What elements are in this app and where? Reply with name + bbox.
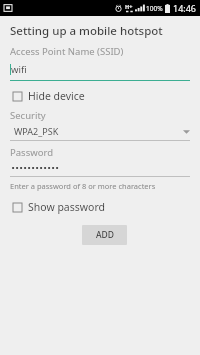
staticText: 14:46 bbox=[173, 2, 197, 14]
staticText: WPA2_PSK bbox=[14, 125, 59, 137]
staticText: Access Point Name (SSID) bbox=[10, 45, 124, 58]
button[interactable]: Hide device bbox=[10, 89, 190, 103]
staticText: 100% bbox=[146, 4, 163, 13]
staticText: H+ bbox=[125, 3, 133, 10]
staticText: Enter a password of 8 or more characters bbox=[10, 181, 156, 191]
staticText: wifi bbox=[11, 63, 27, 76]
staticText: ADD bbox=[96, 229, 114, 241]
staticText: Show password bbox=[28, 200, 105, 214]
staticText: Password bbox=[10, 146, 53, 159]
staticText: Setting up a mobile hotspot bbox=[10, 23, 163, 39]
button[interactable]: Show password bbox=[10, 200, 190, 214]
button[interactable]: ADD bbox=[82, 225, 127, 245]
button[interactable]: wifi bbox=[10, 63, 190, 81]
staticText: Hide device bbox=[28, 89, 85, 103]
staticText: Security bbox=[10, 109, 46, 122]
button[interactable] bbox=[10, 165, 190, 177]
button[interactable]: WPA2_PSK bbox=[10, 125, 190, 141]
